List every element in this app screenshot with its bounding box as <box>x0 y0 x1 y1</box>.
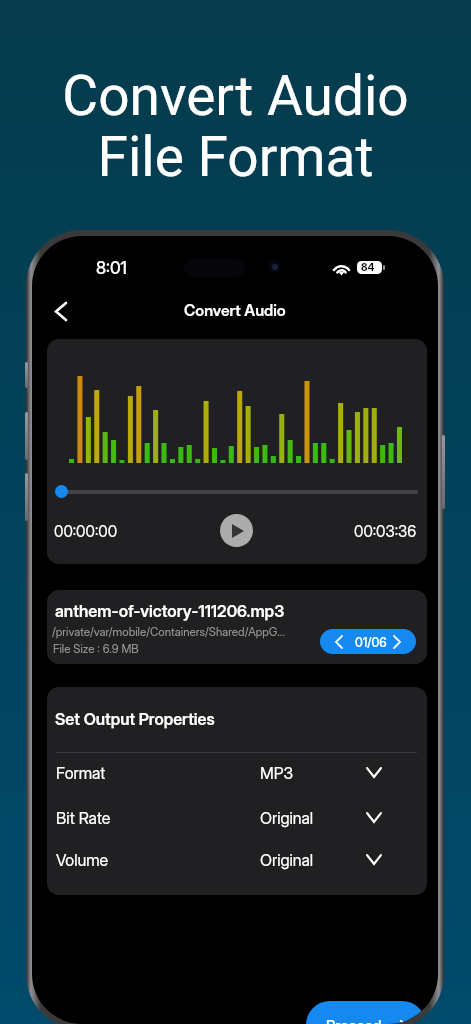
staticText: MP3 <box>260 763 294 782</box>
staticText: anthem-of-victory-111206.mp3 <box>55 601 285 621</box>
button[interactable]: Volume <box>47 843 427 887</box>
staticText: Original <box>260 808 314 827</box>
staticText: Convert Audio <box>184 301 286 320</box>
staticText: File Size : 6.9 MB <box>53 642 139 656</box>
button[interactable]: anthem-of-victory-111206.mp3 <box>47 590 427 664</box>
staticText: Original <box>260 850 314 869</box>
staticText: Proceed <box>326 1016 382 1024</box>
button[interactable]: Back <box>44 294 78 328</box>
staticText: Convert Audio File Format <box>0 64 471 189</box>
staticText: 8:01 <box>96 258 127 279</box>
button[interactable]: Seek <box>55 485 68 498</box>
staticText: 01/06 <box>355 635 387 650</box>
staticText: /private/var/mobile/Containers/Shared/Ap… <box>52 625 285 639</box>
staticText: 84 <box>361 261 375 274</box>
button[interactable]: Proceed <box>306 1001 426 1024</box>
staticText: Volume <box>56 850 109 869</box>
button[interactable]: Previous / next file, 01 of 06 <box>320 629 416 654</box>
button[interactable]: Play <box>220 514 253 547</box>
button[interactable]: Format <box>47 756 427 800</box>
staticText: 00:00:00 <box>54 522 118 541</box>
button[interactable]: Bit Rate <box>47 801 427 845</box>
staticText: 00:03:36 <box>354 522 417 541</box>
staticText: Format <box>56 763 106 782</box>
staticText: Set Output Properties <box>55 709 215 729</box>
staticText: Bit Rate <box>56 808 111 827</box>
